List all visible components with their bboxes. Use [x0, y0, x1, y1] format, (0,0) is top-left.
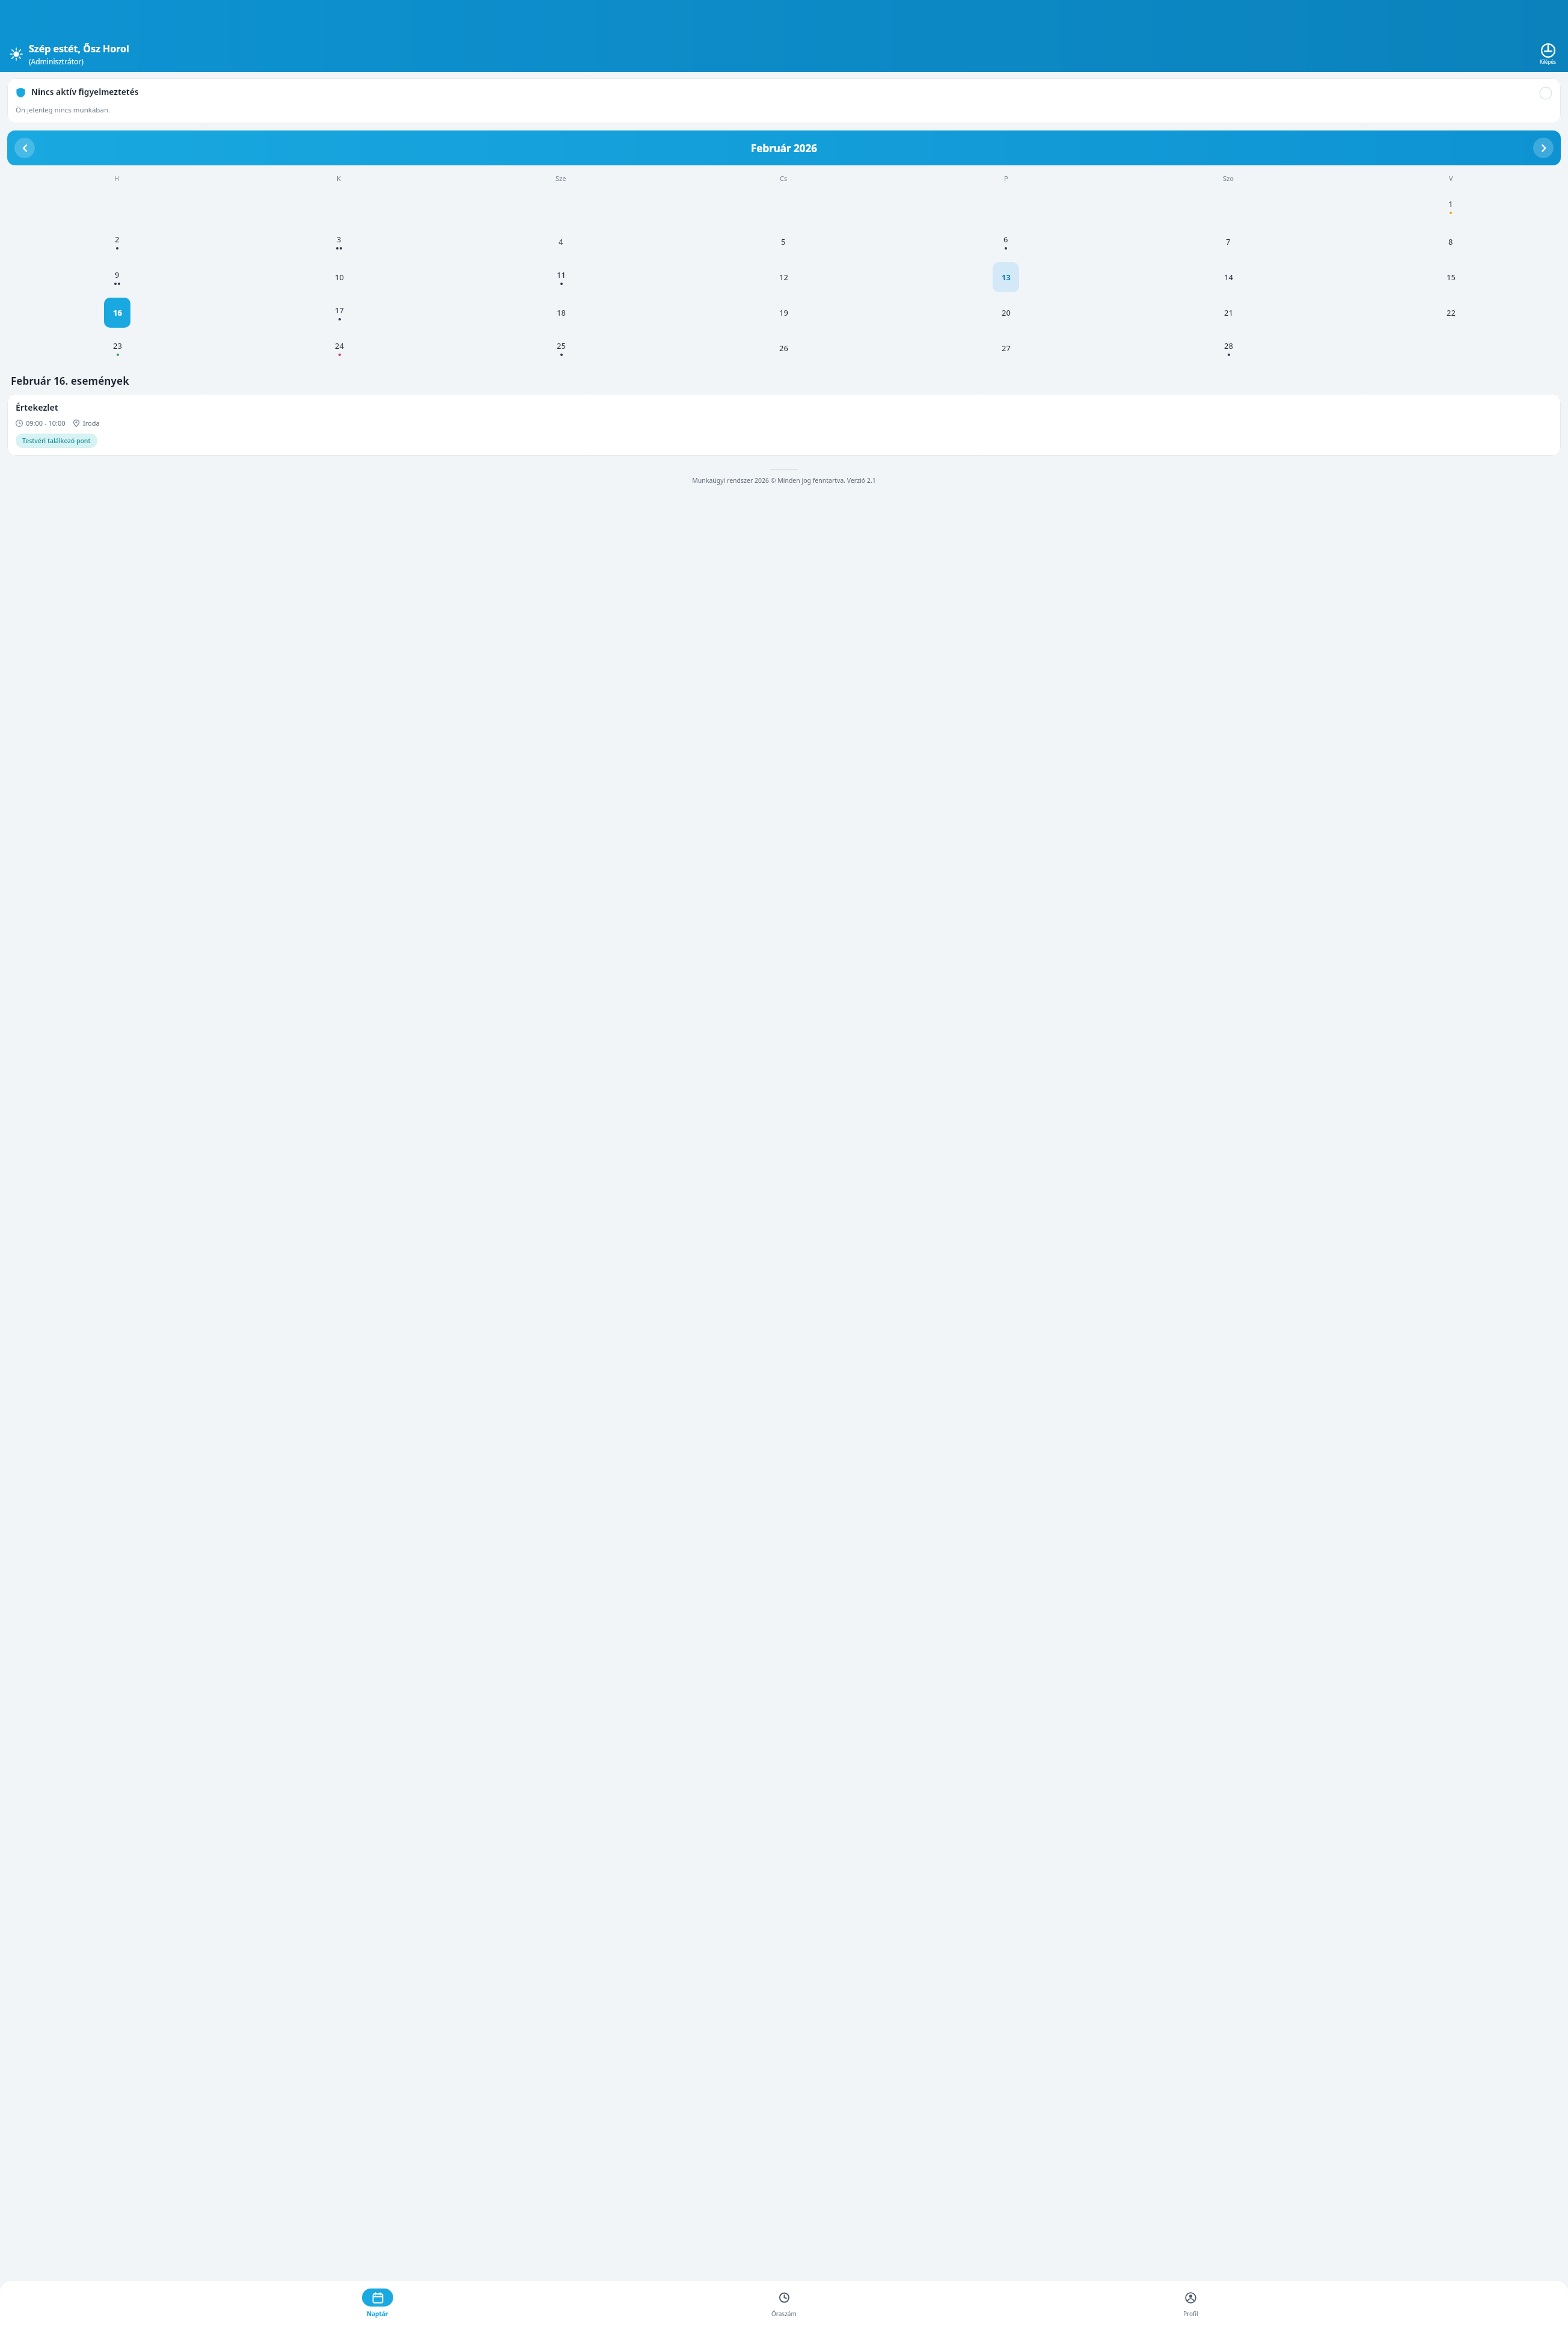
button[interactable]: Előző hónap	[14, 138, 35, 158]
button[interactable]: 15	[1438, 262, 1464, 292]
staticText: 27	[1002, 343, 1011, 354]
staticText: 22	[1447, 307, 1456, 318]
staticText: 9	[115, 269, 120, 280]
staticText: 20	[1002, 307, 1011, 318]
staticText: Február 2026	[751, 141, 817, 155]
button[interactable]: 26	[770, 333, 797, 363]
button[interactable]: 22	[1438, 298, 1464, 328]
staticText: 18	[557, 307, 566, 318]
staticText: 5	[781, 236, 786, 247]
staticText: Február 16. események	[11, 374, 129, 388]
button[interactable]: 25	[548, 333, 574, 363]
staticText: Munkaügyi rendszer 2026 © Minden jog fen…	[14, 476, 1554, 485]
staticText: 24	[335, 340, 344, 351]
button[interactable]: 20	[993, 298, 1019, 328]
staticText: 15	[1447, 272, 1456, 283]
staticText: 8	[1448, 236, 1453, 247]
staticText: 1	[1448, 198, 1453, 209]
button[interactable]: Kijelentkezés	[1537, 41, 1558, 66]
staticText: 4	[559, 236, 563, 247]
staticText: 6	[1003, 234, 1008, 245]
button[interactable]: 23	[104, 333, 130, 363]
staticText: 7	[1226, 236, 1231, 247]
staticText: Nincs aktív figyelmeztetés	[31, 87, 139, 97]
staticText: 28	[1224, 340, 1233, 351]
staticText: 14	[1224, 272, 1233, 283]
staticText: 13	[1002, 272, 1011, 283]
staticText: H	[114, 174, 120, 183]
button[interactable]: 12	[770, 262, 797, 292]
button[interactable]: Naptár	[349, 2286, 406, 2320]
button[interactable]: 19	[770, 298, 797, 328]
staticText: Értekezlet	[16, 402, 58, 413]
staticText: Szép estét, Ősz Horol	[29, 42, 129, 55]
button[interactable]: Testvéri találkozó pont	[16, 434, 97, 448]
button[interactable]: 17	[326, 298, 352, 328]
staticText: 17	[335, 305, 344, 316]
button[interactable]: 5	[770, 227, 797, 257]
staticText: Naptár	[367, 2310, 388, 2318]
staticText: Kilépés	[1540, 58, 1556, 65]
staticText: Óraszám	[771, 2310, 797, 2318]
button[interactable]: 11	[548, 262, 574, 292]
staticText: P	[1004, 174, 1008, 183]
button[interactable]: Következő hónap	[1533, 138, 1554, 158]
staticText: 23	[113, 340, 122, 351]
button[interactable]: 18	[548, 298, 574, 328]
staticText: 11	[557, 269, 566, 280]
button[interactable]: 14	[1215, 262, 1242, 292]
staticText: Iroda	[83, 418, 100, 428]
staticText: 21	[1224, 307, 1233, 318]
button[interactable]: 9	[104, 262, 130, 292]
button[interactable]: 3	[326, 227, 352, 257]
staticText: Ön jelenleg nincs munkában.	[16, 105, 111, 115]
staticText: 10	[335, 272, 344, 283]
button[interactable]: Nincs aktív figyelmeztetés	[7, 78, 1561, 123]
staticText: 2	[115, 234, 120, 245]
staticText: K	[337, 174, 341, 183]
staticText: Szo	[1223, 174, 1234, 183]
button[interactable]: 16	[104, 298, 130, 328]
staticText: Sze	[556, 174, 566, 183]
staticText: 12	[779, 272, 788, 283]
button[interactable]: 27	[993, 333, 1019, 363]
button[interactable]: 7	[1215, 227, 1242, 257]
button[interactable]: 2	[104, 227, 130, 257]
button[interactable]: 6	[993, 227, 1019, 257]
button[interactable]: 1	[1438, 191, 1464, 221]
staticText: V	[1449, 174, 1453, 183]
staticText: Testvéri találkozó pont	[22, 437, 91, 445]
button[interactable]: Értekezlet	[7, 394, 1561, 456]
button[interactable]: 24	[326, 333, 352, 363]
button[interactable]: 4	[548, 227, 574, 257]
staticText: 26	[779, 343, 788, 354]
staticText: (Adminisztrátor)	[29, 57, 84, 66]
staticText: 09:00 - 10:00	[26, 418, 66, 428]
button[interactable]: Óraszám	[755, 2286, 813, 2320]
staticText: 25	[557, 340, 566, 351]
button[interactable]: 13	[993, 262, 1019, 292]
staticText: 16	[113, 307, 122, 318]
staticText: 3	[337, 234, 341, 245]
button[interactable]: Profil	[1162, 2286, 1219, 2320]
staticText: 19	[779, 307, 788, 318]
button[interactable]: 8	[1438, 227, 1464, 257]
staticText: Profil	[1183, 2310, 1198, 2318]
button[interactable]: 21	[1215, 298, 1242, 328]
button[interactable]: 10	[326, 262, 352, 292]
staticText: Cs	[780, 174, 788, 183]
button[interactable]: 28	[1215, 333, 1242, 363]
